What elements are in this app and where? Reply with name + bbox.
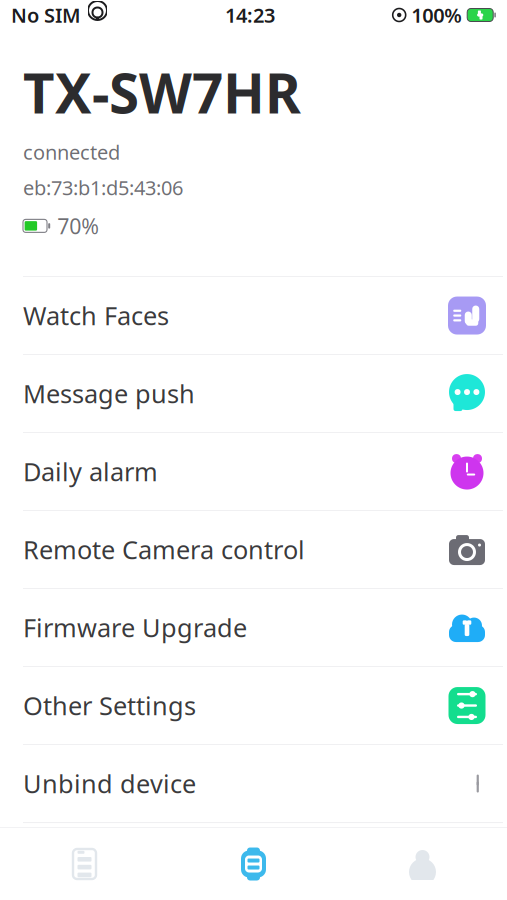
staticText: 70%: [57, 212, 99, 240]
button[interactable]: Firmware Upgrade: [0, 589, 507, 667]
button[interactable]: Daily alarm: [0, 433, 507, 511]
staticText: 14:23: [225, 2, 275, 28]
button[interactable]: Message push: [0, 355, 507, 433]
staticText: Unbind device: [23, 767, 196, 800]
staticText: 100%: [411, 2, 462, 28]
button[interactable]: Unbind device: [0, 745, 507, 823]
staticText: Message push: [23, 377, 195, 410]
staticText: Firmware Upgrade: [23, 611, 247, 644]
staticText: Remote Camera control: [23, 533, 305, 566]
staticText: TX-SW7HR: [23, 56, 301, 129]
button[interactable]: Remote Camera control: [0, 511, 507, 589]
button[interactable]: Device: [169, 828, 338, 900]
staticText: Daily alarm: [23, 455, 158, 488]
staticText: Other Settings: [23, 689, 196, 722]
staticText: connected: [23, 139, 120, 165]
button[interactable]: Records: [0, 828, 169, 900]
button[interactable]: Profile: [338, 828, 507, 900]
button[interactable]: Watch Faces: [0, 277, 507, 355]
staticText: No SIM: [11, 2, 81, 28]
button[interactable]: Other Settings: [0, 667, 507, 745]
staticText: eb:73:b1:d5:43:06: [23, 174, 183, 201]
staticText: Watch Faces: [23, 299, 169, 332]
